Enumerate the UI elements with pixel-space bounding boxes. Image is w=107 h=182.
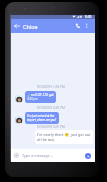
- staticText: Type a message...: [22, 153, 53, 158]
- staticText: I'm nearly there 🙂, just got out of the …: [37, 132, 91, 142]
- button[interactable]: Add attachment: [11, 149, 21, 162]
- button[interactable]: Back: [11, 19, 23, 33]
- staticText: 9/10/2019 3:01 PM: [37, 125, 65, 129]
- staticText: I've just arrived at the airport, where …: [27, 114, 57, 122]
- staticText: Chloe: [23, 23, 38, 30]
- staticText: 8:30: [85, 15, 92, 19]
- button[interactable]: Send: [85, 153, 91, 159]
- staticText: 9/10/2019 2:45 PM: [37, 106, 65, 110]
- button[interactable]: no 0-0F-123 gat: [27, 93, 54, 101]
- staticText: no 0-0F-123 gat: [31, 93, 54, 97]
- button[interactable]: More options: [82, 19, 91, 33]
- staticText: 4:30pm: [27, 97, 38, 101]
- button[interactable]: I'm nearly there 🙂, just got out of the …: [37, 132, 91, 142]
- button[interactable]: I've just arrived at the airport, where …: [27, 114, 57, 122]
- staticText: 9/10/2019 1:52 PM: [37, 85, 65, 89]
- button[interactable]: Call: [73, 19, 82, 33]
